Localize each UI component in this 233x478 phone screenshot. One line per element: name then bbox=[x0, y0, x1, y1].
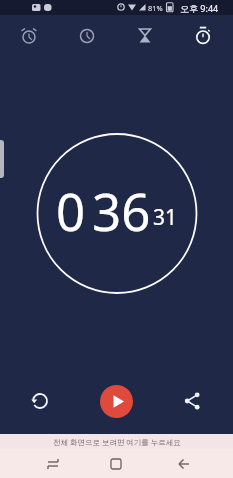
staticText: 전체 화면으로 보려면 여기를 누르세요 bbox=[53, 437, 181, 447]
button[interactable]: 전체 화면으로 보려면 여기를 누르세요 bbox=[0, 434, 233, 449]
staticText: 81% bbox=[148, 3, 163, 13]
button[interactable] bbox=[100, 385, 133, 418]
staticText: 0 bbox=[56, 176, 86, 245]
button[interactable] bbox=[0, 16, 58, 56]
button[interactable] bbox=[24, 385, 56, 417]
staticText: 31 bbox=[153, 203, 178, 232]
button[interactable] bbox=[58, 16, 116, 56]
button[interactable] bbox=[155, 449, 233, 478]
button[interactable] bbox=[0, 449, 77, 478]
button[interactable] bbox=[77, 449, 155, 478]
staticText: 36 bbox=[92, 176, 151, 245]
button[interactable] bbox=[116, 16, 174, 56]
button[interactable] bbox=[174, 16, 232, 56]
staticText: 오후 9:44 bbox=[180, 2, 219, 14]
button[interactable] bbox=[177, 385, 209, 417]
